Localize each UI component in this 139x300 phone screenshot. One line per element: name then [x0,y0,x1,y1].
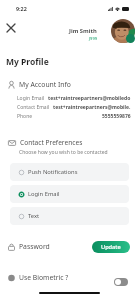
staticText: Choose how you wish to be contacted [19,149,108,156]
button[interactable]: Use Biometric toggle [114,278,128,286]
staticText: Contact Email [17,104,50,111]
button[interactable]: Push Notifications [10,163,129,181]
staticText: test+raintreepartners@mobile... [53,104,131,111]
button[interactable]: Update [92,241,130,253]
staticText: Use Biometric ? [19,273,69,282]
staticText: test+raintreepartners@mobiledo... [48,95,131,102]
staticText: Login Email [28,190,60,198]
staticText: Phone [17,113,33,120]
staticText: Push Notifications [28,168,78,176]
button[interactable]: Close [3,20,19,36]
staticText: J999 [89,36,97,41]
staticText: Password [19,242,50,251]
staticText: Jim Smith [69,27,97,35]
staticText: Contact Preferences [20,138,83,147]
staticText: Update [101,243,121,251]
staticText: 5555559876 [102,113,131,120]
button[interactable]: Text [10,207,129,225]
button[interactable]: Login Email [10,185,129,203]
staticText: My Profile [6,56,49,68]
staticText: Text [28,212,40,220]
staticText: Login Email [17,95,45,102]
staticText: 9:22 [16,5,27,12]
staticText: My Account Info [19,80,71,89]
button[interactable]: Jim Smith [52,18,135,44]
